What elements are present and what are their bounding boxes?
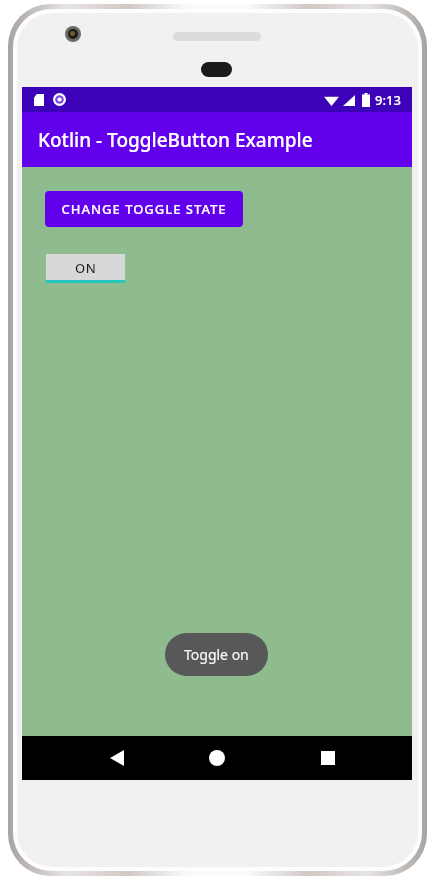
staticText: ON xyxy=(75,259,97,277)
staticText: CHANGE TOGGLE STATE xyxy=(61,200,227,218)
staticText: Kotlin - ToggleButton Example xyxy=(38,127,313,153)
button[interactable]: CHANGE TOGGLE STATE xyxy=(45,191,243,227)
button[interactable]: Back xyxy=(87,736,147,780)
staticText: 9:13 xyxy=(375,91,401,109)
button[interactable]: Home xyxy=(187,736,247,780)
staticText: Toggle on xyxy=(184,645,249,664)
button[interactable]: Recent apps xyxy=(298,736,358,780)
button[interactable]: ON xyxy=(46,254,125,283)
